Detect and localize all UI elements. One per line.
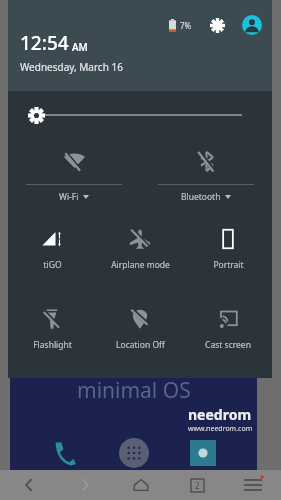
button[interactable]: Airplane mode: [96, 209, 184, 289]
button[interactable]: Cast screen: [184, 289, 272, 370]
button[interactable]: Menu: [225, 470, 281, 500]
staticText: Wi-Fi: [59, 191, 79, 203]
staticText: AM: [72, 40, 88, 54]
staticText: Flashlight: [33, 339, 72, 351]
button[interactable]: Wi-Fi: [8, 139, 140, 209]
button[interactable]: Flashlight: [8, 289, 96, 370]
button[interactable]: Portrait: [184, 209, 272, 289]
staticText: needrom: [188, 405, 252, 424]
staticText: 7%: [180, 20, 192, 31]
staticText: Location Off: [116, 339, 165, 351]
staticText: Wednesday, March 16: [20, 60, 123, 74]
staticText: Bluetooth: [181, 191, 221, 203]
staticText: Portrait: [213, 259, 244, 271]
button[interactable]: Back: [0, 470, 57, 500]
button[interactable]: Location Off: [96, 289, 184, 370]
button[interactable]: User profile: [240, 13, 264, 37]
staticText: www.needrom.com: [188, 424, 253, 434]
button[interactable]: Settings: [206, 14, 228, 36]
button[interactable]: Brightness: [8, 91, 272, 139]
staticText: Cast screen: [205, 339, 251, 351]
staticText: minimal OS: [77, 376, 191, 405]
staticText: 12:54: [20, 30, 69, 56]
button[interactable]: Home: [113, 470, 169, 500]
button[interactable]: Bluetooth: [140, 139, 272, 209]
staticText: Airplane mode: [111, 259, 170, 271]
staticText: 2: [195, 480, 200, 491]
button[interactable]: tiGO: [8, 209, 96, 289]
button[interactable]: Tabs: 2: [169, 470, 225, 500]
staticText: tiGO: [43, 259, 62, 271]
